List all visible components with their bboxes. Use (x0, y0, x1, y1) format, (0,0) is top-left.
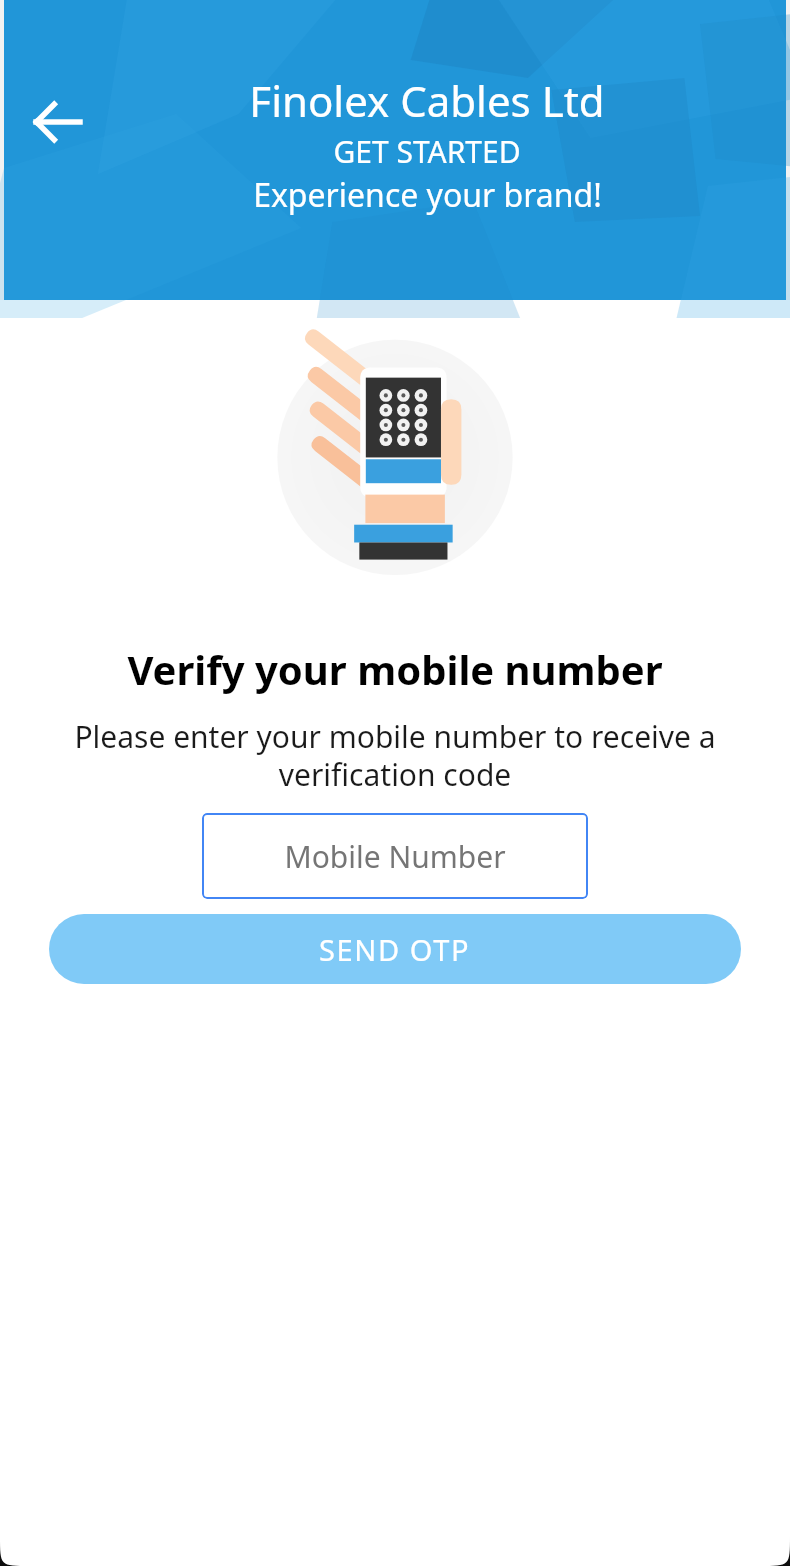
staticText: Finolex Cables Ltd (249, 72, 605, 129)
staticText: Mobile Number (284, 836, 506, 877)
staticText: GET STARTED (333, 131, 521, 172)
button[interactable]: SEND OTP (49, 914, 741, 984)
staticText: Verify your mobile number (127, 642, 663, 696)
button[interactable]: Back (20, 84, 96, 160)
staticText: Experience your brand! (253, 173, 602, 217)
staticText: Please enter your mobile number to recei… (62, 716, 728, 795)
staticText: SEND OTP (319, 930, 471, 969)
button[interactable]: Mobile Number (202, 813, 588, 899)
